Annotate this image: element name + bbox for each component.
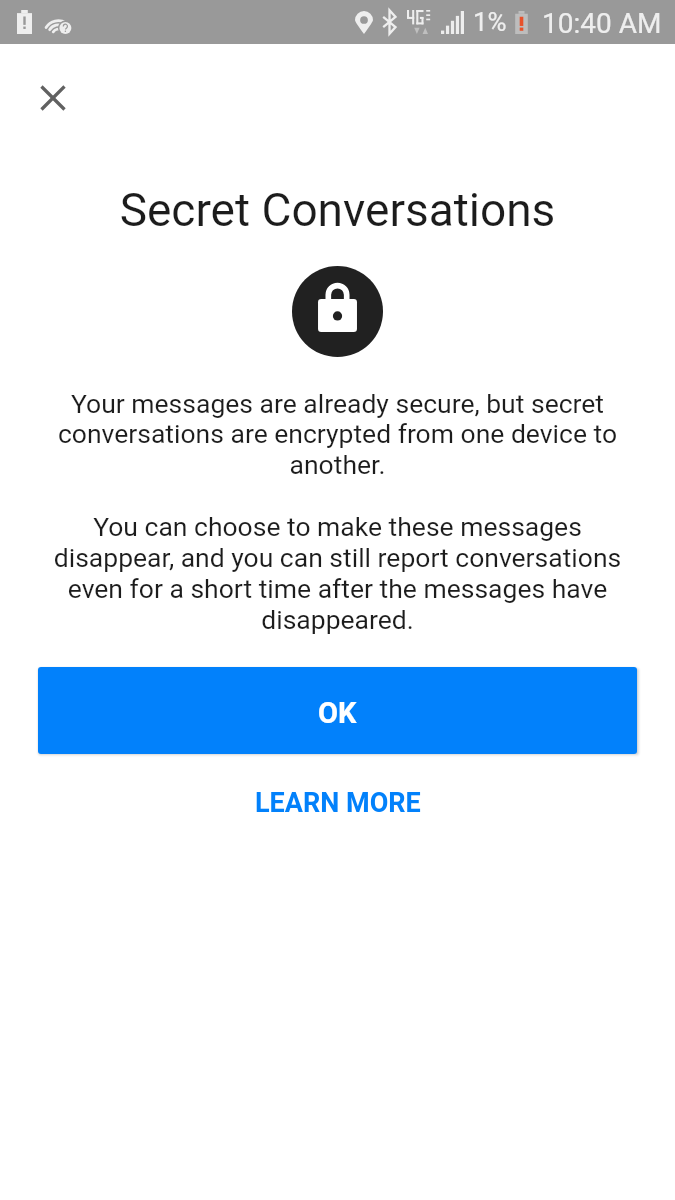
staticText: Your messages are already secure, but se… xyxy=(0,388,675,636)
staticText: 10:40 AM xyxy=(542,7,662,40)
staticText: OK xyxy=(318,696,357,730)
staticText: Secret Conversations xyxy=(0,183,675,237)
button[interactable]: LEARN MORE xyxy=(225,773,451,833)
staticText: LEARN MORE xyxy=(255,787,421,819)
button[interactable]: OK xyxy=(38,667,637,754)
staticText: 1% xyxy=(473,7,507,37)
button[interactable]: Close xyxy=(27,72,78,123)
